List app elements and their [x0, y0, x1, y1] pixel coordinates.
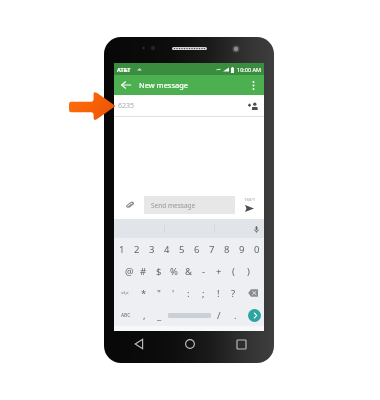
- button[interactable]: ?: [226, 282, 241, 304]
- button[interactable]: 7: [204, 238, 219, 260]
- staticText: =\<: [121, 290, 129, 297]
- button[interactable]: Attach file: [124, 199, 136, 211]
- button[interactable]: Home: [183, 337, 197, 351]
- button[interactable]: 8: [219, 238, 234, 260]
- staticText: +: [216, 265, 222, 278]
- button[interactable]: Back: [132, 337, 146, 351]
- staticText: _: [157, 309, 162, 322]
- button[interactable]: 6: [189, 238, 204, 260]
- button[interactable]: 0: [249, 238, 264, 260]
- staticText: 6235: [118, 101, 135, 111]
- button[interactable]: $: [151, 260, 166, 282]
- staticText: 3: [149, 243, 155, 256]
- staticText: ?: [231, 287, 236, 300]
- staticText: %: [170, 265, 178, 278]
- button[interactable]: Enter: [244, 304, 264, 326]
- button[interactable]: =\<: [114, 282, 136, 304]
- button[interactable]: +: [211, 260, 226, 282]
- button[interactable]: Space: [167, 304, 211, 326]
- staticText: 8: [224, 243, 230, 256]
- button[interactable]: ABC: [114, 304, 137, 326]
- button[interactable]: Add contact: [247, 100, 259, 112]
- staticText: 10:00 AM: [237, 66, 261, 73]
- button[interactable]: 4: [159, 238, 174, 260]
- staticText: #: [140, 265, 147, 278]
- button[interactable]: Send message: [144, 196, 235, 214]
- button[interactable]: ,: [137, 304, 151, 326]
- button[interactable]: 2: [129, 238, 144, 260]
- button[interactable]: ': [166, 282, 181, 304]
- staticText: 1: [119, 243, 125, 256]
- staticText: 6: [194, 243, 200, 256]
- staticText: -: [202, 265, 206, 278]
- staticText: $: [156, 265, 162, 278]
- staticText: 4: [164, 243, 170, 256]
- button[interactable]: #: [136, 260, 151, 282]
- staticText: 0: [254, 243, 260, 256]
- staticText: 2: [134, 243, 140, 256]
- button[interactable]: Voice input: [250, 223, 262, 235]
- button[interactable]: @: [122, 260, 136, 282]
- button[interactable]: /: [211, 304, 227, 326]
- button[interactable]: *: [136, 282, 151, 304]
- staticText: (: [232, 265, 235, 278]
- staticText: ABC: [121, 312, 131, 319]
- button[interactable]: .: [227, 304, 244, 326]
- button[interactable]: -: [196, 260, 211, 282]
- button[interactable]: _: [151, 304, 167, 326]
- staticText: /: [217, 309, 221, 322]
- staticText: !: [217, 287, 220, 300]
- staticText: ): [247, 265, 250, 278]
- staticText: :: [187, 287, 190, 300]
- button[interactable]: More options: [245, 77, 261, 93]
- button[interactable]: %: [166, 260, 181, 282]
- staticText: AT&T: [117, 66, 131, 73]
- staticText: ;: [202, 287, 205, 300]
- button[interactable]: 1: [114, 238, 129, 260]
- staticText: &: [185, 265, 192, 278]
- button[interactable]: Back: [118, 77, 134, 93]
- button[interactable]: 9: [234, 238, 249, 260]
- button[interactable]: !: [211, 282, 226, 304]
- staticText: 160/1: [244, 197, 256, 203]
- button[interactable]: ): [241, 260, 256, 282]
- button[interactable]: 5: [174, 238, 189, 260]
- button[interactable]: 3: [144, 238, 159, 260]
- button[interactable]: ;: [196, 282, 211, 304]
- staticText: @: [125, 265, 134, 278]
- button[interactable]: Send: [242, 200, 257, 214]
- staticText: ": [157, 287, 161, 300]
- staticText: *: [141, 287, 147, 300]
- staticText: ,: [143, 309, 146, 322]
- button[interactable]: &: [181, 260, 196, 282]
- button[interactable]: Recent apps: [234, 337, 248, 351]
- button[interactable]: ": [151, 282, 166, 304]
- staticText: 9: [239, 243, 245, 256]
- staticText: New message: [139, 80, 189, 90]
- button[interactable]: Backspace: [241, 282, 264, 304]
- staticText: Send message: [151, 201, 196, 210]
- staticText: .: [234, 309, 237, 322]
- staticText: ': [172, 287, 175, 300]
- staticText: 5: [179, 243, 185, 256]
- button[interactable]: :: [181, 282, 196, 304]
- staticText: 7: [209, 243, 215, 256]
- button[interactable]: (: [226, 260, 241, 282]
